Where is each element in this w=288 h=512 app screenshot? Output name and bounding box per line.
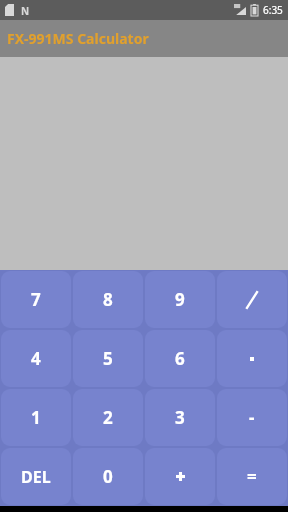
- staticText: DEL: [21, 466, 51, 488]
- button[interactable]: 9: [145, 271, 215, 328]
- button[interactable]: 3: [145, 389, 215, 446]
- staticText: =: [247, 465, 257, 488]
- staticText: 7: [31, 288, 41, 311]
- button[interactable]: 6: [145, 330, 215, 387]
- button[interactable]: Decimal point: [217, 330, 287, 387]
- button[interactable]: Divide: [217, 271, 287, 328]
- button[interactable]: 7: [1, 271, 71, 328]
- staticText: 2: [103, 406, 113, 429]
- button[interactable]: Subtract: [217, 389, 287, 446]
- button[interactable]: 0: [73, 448, 143, 505]
- staticText: 6:35: [263, 3, 283, 17]
- button[interactable]: 2: [73, 389, 143, 446]
- staticText: 8: [103, 288, 113, 311]
- staticText: 5: [103, 347, 113, 370]
- staticText: -: [249, 406, 255, 429]
- button[interactable]: Add: [145, 448, 215, 505]
- staticText: 3: [175, 406, 185, 429]
- staticText: 0: [103, 465, 113, 488]
- button[interactable]: DEL: [1, 448, 71, 505]
- button[interactable]: 1: [1, 389, 71, 446]
- staticText: N: [21, 4, 30, 16]
- staticText: 1: [31, 406, 41, 429]
- staticText: 6: [175, 347, 185, 370]
- button[interactable]: 8: [73, 271, 143, 328]
- button[interactable]: 4: [1, 330, 71, 387]
- staticText: FX-991MS Calculator: [7, 29, 149, 48]
- staticText: 9: [175, 288, 185, 311]
- staticText: 4: [31, 347, 41, 370]
- button[interactable]: 5: [73, 330, 143, 387]
- button[interactable]: Equals: [217, 448, 287, 505]
